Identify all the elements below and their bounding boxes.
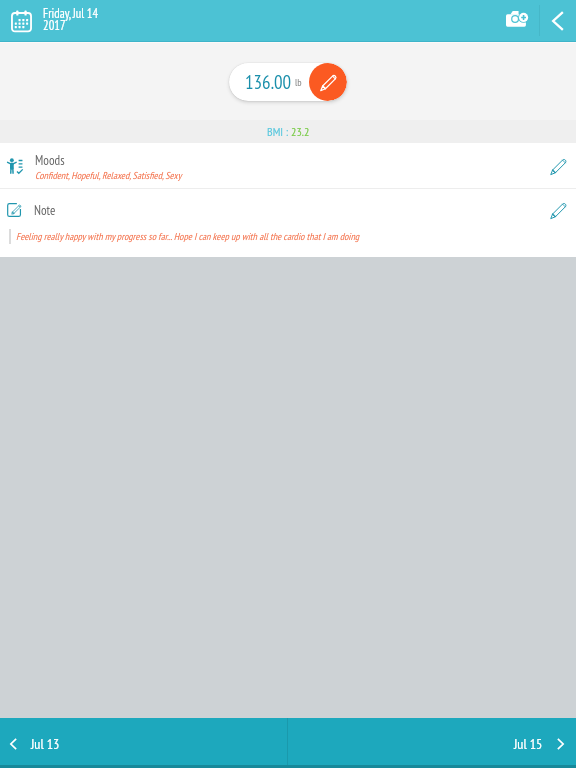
button[interactable]: Back — [540, 3, 576, 39]
button[interactable]: Jul 15 — [288, 718, 576, 765]
staticText: 23.2 — [291, 124, 310, 140]
button[interactable]: Calendar — [3, 3, 39, 39]
staticText: Note — [34, 202, 56, 219]
button[interactable]: 136.00 — [229, 63, 347, 101]
button[interactable]: Edit note — [536, 192, 576, 229]
button[interactable]: BMI : — [0, 120, 576, 143]
button[interactable]: Note — [0, 189, 576, 226]
staticText: BMI : — [267, 124, 291, 140]
staticText: Friday, Jul 14 2017 — [43, 5, 99, 34]
button[interactable]: Feeling really happy with my progress so… — [9, 226, 576, 246]
staticText: Feeling really happy with my progress so… — [16, 230, 360, 243]
button[interactable]: Jul 13 — [0, 718, 287, 765]
button[interactable]: Moods — [0, 143, 576, 188]
staticText: Jul 13 — [31, 735, 60, 753]
staticText: Jul 15 — [514, 735, 543, 753]
staticText: Confident, Hopeful, Relaxed, Satisfied, … — [35, 169, 182, 182]
staticText: Moods — [35, 152, 65, 169]
staticText: lb — [295, 76, 302, 89]
staticText: 136.00 — [245, 70, 292, 95]
button[interactable]: Edit moods — [536, 146, 576, 186]
button[interactable]: Edit weight — [309, 63, 347, 101]
button[interactable]: Add photo — [496, 0, 539, 41]
